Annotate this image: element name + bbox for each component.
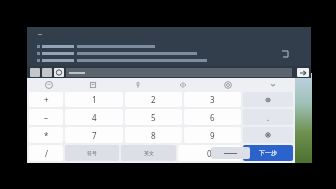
staticText: 2 bbox=[151, 94, 156, 105]
button[interactable]: Collapse keyboard bbox=[250, 78, 295, 91]
button[interactable]: Backspace bbox=[243, 92, 293, 107]
staticText: 9 bbox=[210, 130, 215, 141]
staticText: . bbox=[267, 112, 270, 123]
button[interactable]: Send bbox=[297, 68, 309, 77]
button[interactable] bbox=[66, 68, 292, 77]
button[interactable]: 9 bbox=[184, 127, 241, 143]
staticText: 下一步 bbox=[259, 149, 277, 157]
button[interactable]: Translate bbox=[160, 78, 205, 91]
button[interactable]: 6 bbox=[184, 109, 241, 125]
button[interactable]: 3 bbox=[184, 92, 241, 107]
staticText: 4 bbox=[92, 112, 97, 123]
staticText: 1 bbox=[92, 94, 97, 105]
button[interactable]: 符号 bbox=[65, 145, 119, 161]
button[interactable]: 5 bbox=[125, 109, 182, 125]
button[interactable]: Clipboard bbox=[71, 78, 115, 91]
button[interactable]: Tool 1 bbox=[42, 68, 52, 77]
button[interactable]: 8 bbox=[125, 127, 182, 143]
staticText: 7 bbox=[92, 130, 97, 141]
staticText: – bbox=[44, 112, 48, 123]
button[interactable]: 2 bbox=[125, 92, 182, 107]
staticText: 6 bbox=[210, 112, 215, 123]
button[interactable]: Voice input bbox=[115, 78, 160, 91]
button[interactable]: 0 bbox=[178, 145, 241, 161]
staticText: * bbox=[44, 130, 49, 141]
button[interactable]: 1 bbox=[65, 92, 123, 107]
button[interactable]: Change keyboard bbox=[243, 127, 293, 143]
button[interactable]: – bbox=[29, 109, 63, 125]
button[interactable]: + bbox=[29, 92, 63, 107]
button[interactable]: * bbox=[29, 127, 63, 143]
button[interactable]: 下一步 bbox=[243, 145, 293, 161]
staticText: 8 bbox=[151, 130, 156, 141]
staticText: 英文 bbox=[144, 150, 154, 156]
staticText: / bbox=[45, 148, 48, 159]
button[interactable]: 4 bbox=[65, 109, 123, 125]
button[interactable]: 英文 bbox=[121, 145, 176, 161]
button[interactable]: 7 bbox=[65, 127, 123, 143]
staticText: 3 bbox=[210, 94, 215, 105]
button[interactable]: Tool 0 bbox=[30, 68, 40, 77]
staticText: 5 bbox=[151, 112, 156, 123]
staticText: 符号 bbox=[87, 150, 97, 156]
button[interactable]: Emoji bbox=[27, 78, 71, 91]
button[interactable]: Space bbox=[211, 147, 250, 159]
button[interactable]: / bbox=[29, 145, 63, 161]
button[interactable]: Tool 2 bbox=[54, 68, 64, 77]
staticText: + bbox=[44, 94, 49, 105]
staticText: 0 bbox=[207, 148, 212, 159]
button[interactable]: Settings bbox=[205, 78, 250, 91]
